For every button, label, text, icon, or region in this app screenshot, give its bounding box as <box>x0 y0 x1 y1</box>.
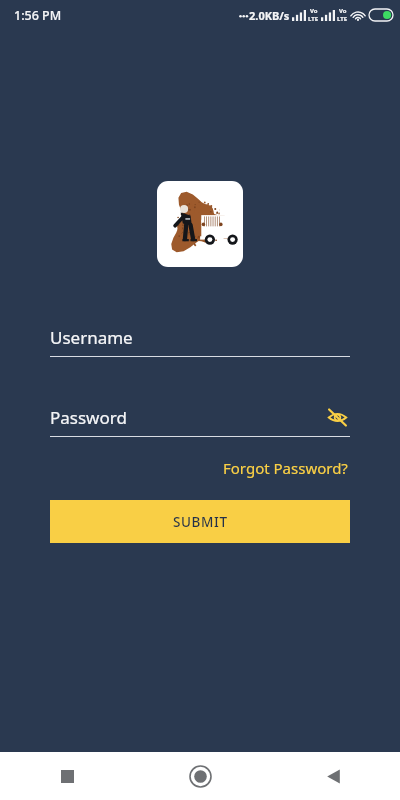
staticText: LTE <box>337 15 348 23</box>
staticText: Vo <box>339 7 347 15</box>
button[interactable]: Home <box>134 752 267 800</box>
staticText: SUBMIT <box>173 513 228 531</box>
button[interactable]: Username <box>50 325 350 357</box>
button[interactable]: Show password <box>324 405 350 429</box>
staticText: Vo <box>310 7 318 15</box>
staticText: 1:56 PM <box>14 7 62 24</box>
staticText: Username <box>50 326 133 349</box>
button[interactable]: SUBMIT <box>50 500 350 543</box>
staticText: Forgot Password? <box>223 458 348 478</box>
staticText: LTE <box>308 15 319 23</box>
button[interactable]: Back <box>267 752 400 800</box>
staticText: 2.0KB/s <box>249 8 290 23</box>
button[interactable]: Forgot Password? <box>220 453 351 483</box>
staticText: Password <box>50 406 127 429</box>
button[interactable]: Recent apps <box>0 752 134 800</box>
button[interactable]: Password <box>50 405 350 437</box>
